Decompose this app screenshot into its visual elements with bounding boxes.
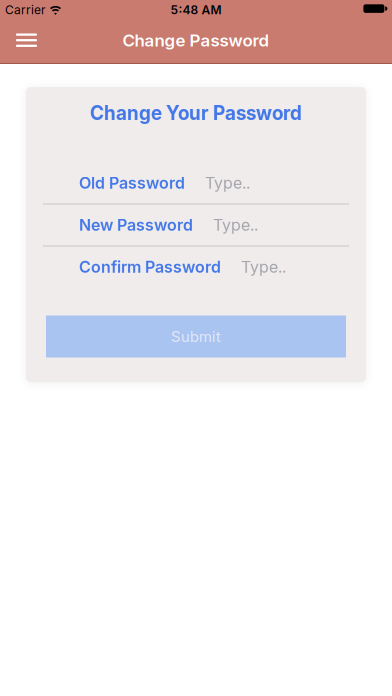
staticText: Type.. — [213, 216, 258, 234]
staticText: Confirm Password — [79, 258, 221, 276]
staticText: Change Your Password — [90, 102, 302, 124]
button[interactable]: New Password field — [26, 204, 366, 246]
button[interactable]: Old Password field — [26, 162, 366, 204]
staticText: Carrier — [5, 3, 46, 17]
staticText: New Password — [79, 216, 193, 234]
button[interactable]: Confirm Password field — [26, 246, 366, 288]
staticText: Old Password — [79, 174, 185, 192]
staticText: Change Password — [122, 30, 269, 50]
staticText: Type.. — [205, 174, 250, 192]
button[interactable]: Menu — [0, 23, 49, 60]
staticText: 5:48 AM — [170, 3, 221, 17]
staticText: Submit — [171, 328, 221, 345]
button[interactable]: Submit — [46, 315, 346, 357]
staticText: Type.. — [241, 258, 286, 276]
